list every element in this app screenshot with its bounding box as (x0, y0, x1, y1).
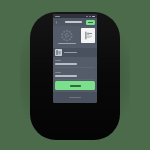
button[interactable]: Pay now (55, 81, 95, 90)
button[interactable] (53, 48, 97, 57)
button[interactable] (53, 57, 97, 69)
button[interactable]: Back (53, 19, 60, 26)
button[interactable] (53, 69, 97, 81)
button[interactable]: Confirm (86, 20, 95, 25)
button[interactable]: Payment card (81, 28, 95, 43)
